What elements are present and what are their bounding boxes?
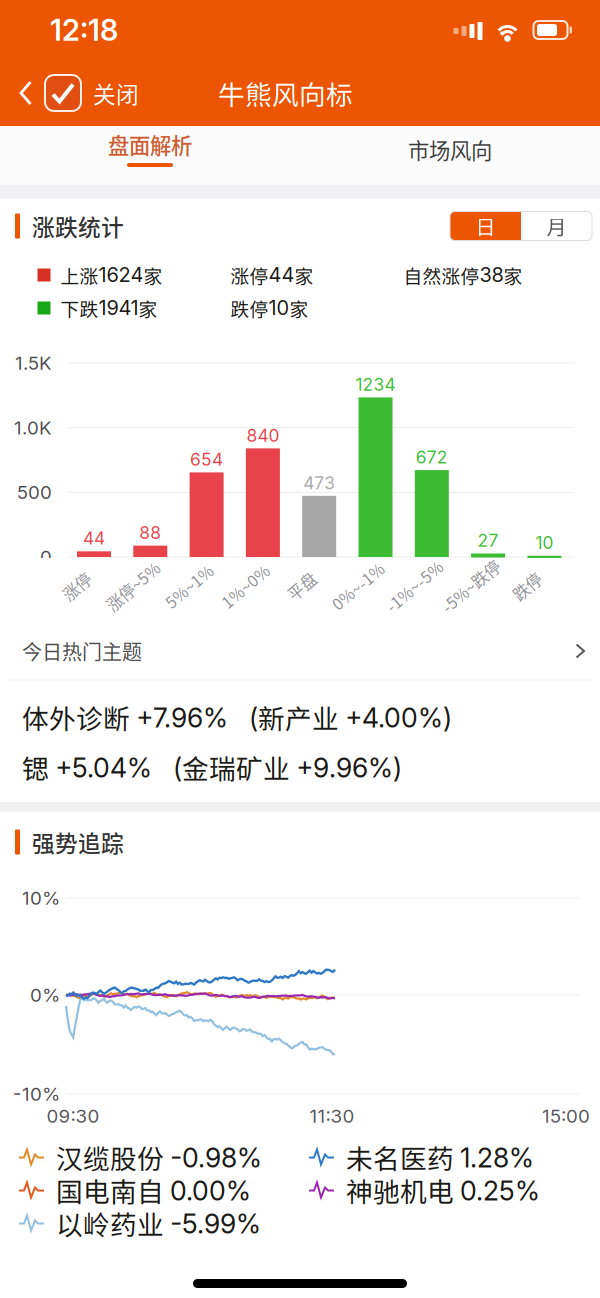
staticText: 关闭 (93, 77, 139, 109)
staticText: 神驰机电 0.25% (346, 1171, 540, 1209)
staticText: 牛熊风向标 (218, 74, 353, 112)
staticText: -10% (13, 1083, 60, 1105)
staticText: 12:18 (50, 12, 118, 48)
staticText: 市场风向 (408, 134, 492, 165)
staticText: 11:30 (309, 1105, 354, 1127)
staticText: 88 (139, 522, 161, 543)
staticText: 自然涨停38家 (403, 262, 522, 288)
staticText: 跌停10家 (230, 295, 308, 321)
staticText: 汉缆股份 -0.98% (56, 1138, 262, 1176)
staticText: 0% (30, 984, 60, 1006)
staticText: 840 (246, 425, 279, 446)
staticText: 44 (83, 528, 105, 549)
staticText: 跌停 (511, 574, 543, 598)
staticText: 今日热门主题 (22, 636, 142, 665)
staticText: -5%~跌停 (435, 574, 506, 598)
staticText: 654 (190, 449, 223, 470)
staticText: 1234 (355, 374, 395, 395)
button[interactable]: 今日热门主题 (0, 625, 600, 677)
staticText: 国电南自 0.00% (56, 1171, 251, 1209)
staticText: 下跌1941家 (60, 295, 157, 321)
staticText: 涨停44家 (230, 262, 313, 288)
staticText: 体外诊断 +7.96% (新产业 +4.00%) (22, 698, 452, 736)
staticText: 09:30 (46, 1105, 99, 1127)
staticText: 平盘 (286, 574, 318, 598)
staticText: 日 (475, 211, 495, 240)
button[interactable]: 月 (521, 211, 592, 240)
button[interactable]: 日 (450, 211, 521, 240)
staticText: 月 (546, 211, 566, 240)
staticText: 10% (22, 887, 60, 909)
staticText: 1.5K (15, 352, 52, 374)
staticText: 涨停 (60, 574, 92, 598)
staticText: 锶 +5.04% (金瑞矿业 +9.96%) (22, 748, 402, 786)
staticText: 盘面解析 (108, 129, 192, 160)
staticText: 672 (416, 447, 448, 468)
staticText: 15:00 (542, 1105, 590, 1127)
staticText: 0 (40, 546, 52, 568)
staticText: 27 (478, 530, 499, 551)
staticText: 以岭药业 -5.99% (56, 1204, 261, 1242)
staticText: 上涨1624家 (60, 262, 162, 288)
staticText: 5%~1% (161, 574, 218, 598)
staticText: 1.0K (14, 416, 52, 439)
staticText: -1%~-5% (380, 574, 449, 598)
button[interactable]: 市场风向 (300, 126, 600, 185)
staticText: 500 (17, 481, 52, 504)
staticText: 0%~-1% (326, 574, 389, 598)
staticText: 未名医药 1.28% (346, 1138, 534, 1176)
button[interactable]: 盘面解析 (0, 126, 300, 185)
staticText: 10 (535, 532, 553, 553)
staticText: 涨跌统计 (32, 210, 124, 242)
staticText: 1%~0% (217, 574, 274, 598)
staticText: 强势追踪 (32, 826, 124, 858)
button[interactable]: 关闭 (0, 60, 149, 126)
staticText: 473 (303, 472, 335, 493)
staticText: 涨停~5% (100, 574, 165, 598)
